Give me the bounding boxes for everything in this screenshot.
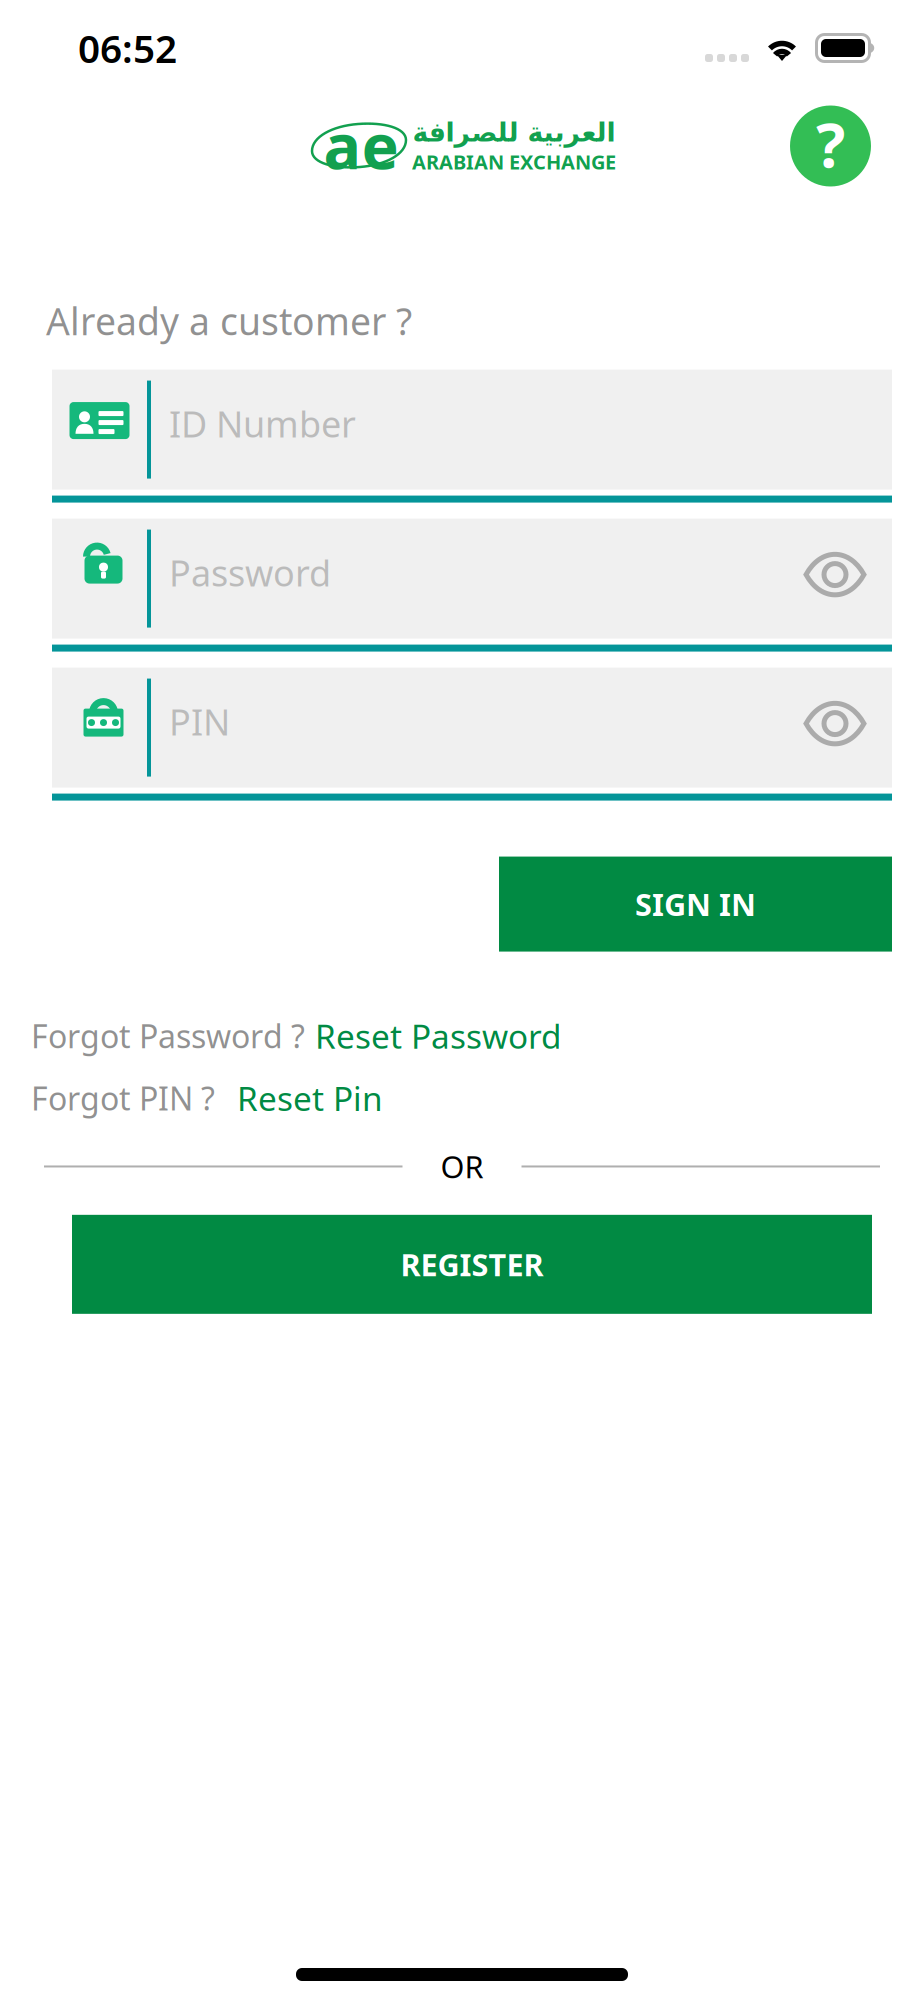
staticText: Forgot PIN ? bbox=[31, 1077, 215, 1119]
staticText: ARABIAN EXCHANGE bbox=[412, 148, 616, 175]
staticText: Reset Pin bbox=[237, 1076, 383, 1120]
staticText: ae bbox=[323, 103, 398, 187]
staticText: Reset Password bbox=[315, 1014, 562, 1058]
staticText: REGISTER bbox=[400, 1244, 543, 1285]
staticText: PIN bbox=[169, 698, 230, 745]
staticText: SIGN IN bbox=[635, 884, 756, 924]
button[interactable]: Help bbox=[790, 105, 871, 186]
button[interactable]: Forgot PIN ? bbox=[0, 1076, 924, 1120]
staticText: العربية للصرافة bbox=[412, 117, 615, 147]
staticText: Already a customer ? bbox=[46, 296, 412, 346]
staticText: 06:52 bbox=[78, 22, 177, 74]
staticText: Password bbox=[169, 549, 331, 596]
button[interactable]: REGISTER bbox=[72, 1215, 872, 1314]
button[interactable]: SIGN IN bbox=[499, 857, 892, 952]
staticText: OR bbox=[440, 1146, 483, 1187]
button[interactable]: Forgot Password ? bbox=[0, 1014, 924, 1058]
staticText: ID Number bbox=[169, 400, 356, 447]
staticText: Forgot Password ? bbox=[31, 1014, 305, 1057]
staticText: ? bbox=[816, 103, 845, 185]
